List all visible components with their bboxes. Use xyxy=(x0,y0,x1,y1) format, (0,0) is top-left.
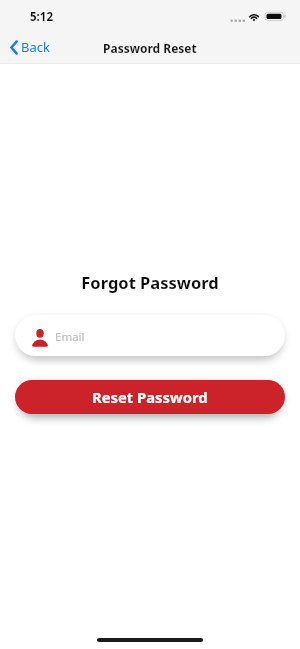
button[interactable]: Back xyxy=(0,33,64,61)
other: Back xyxy=(10,40,18,55)
staticText: Forgot Password xyxy=(0,271,300,293)
button[interactable]: Email xyxy=(15,315,285,356)
staticText: Reset Password xyxy=(92,387,208,407)
button[interactable]: Reset Password xyxy=(15,380,285,414)
staticText: Back xyxy=(21,38,50,56)
staticText: 5:12 xyxy=(30,9,53,25)
staticText: Password Reset xyxy=(103,40,197,56)
staticText: Email xyxy=(55,329,85,345)
